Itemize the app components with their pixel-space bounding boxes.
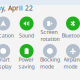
button[interactable]: Airplane mode xyxy=(61,44,80,70)
button[interactable]: Blocking mode xyxy=(38,44,61,70)
button[interactable]: Location xyxy=(0,16,15,42)
staticText: Smart display xyxy=(0,56,12,70)
button[interactable]: Screen rotation xyxy=(38,16,61,42)
staticText: Location xyxy=(0,32,14,39)
staticText: Airplane mode xyxy=(63,56,80,70)
staticText: Sound xyxy=(19,32,34,39)
button[interactable]: Bluetooth xyxy=(61,16,80,42)
staticText: Blocking mode xyxy=(40,56,60,70)
button[interactable]: Power saving xyxy=(15,44,38,70)
button[interactable]: Smart display xyxy=(0,44,15,70)
staticText: Monday, April 22 xyxy=(0,4,33,12)
button[interactable]: Sound xyxy=(15,16,38,42)
staticText: Screen rotation xyxy=(40,28,59,43)
staticText: Power saving xyxy=(19,56,35,70)
staticText: Bluetooth xyxy=(61,32,80,39)
